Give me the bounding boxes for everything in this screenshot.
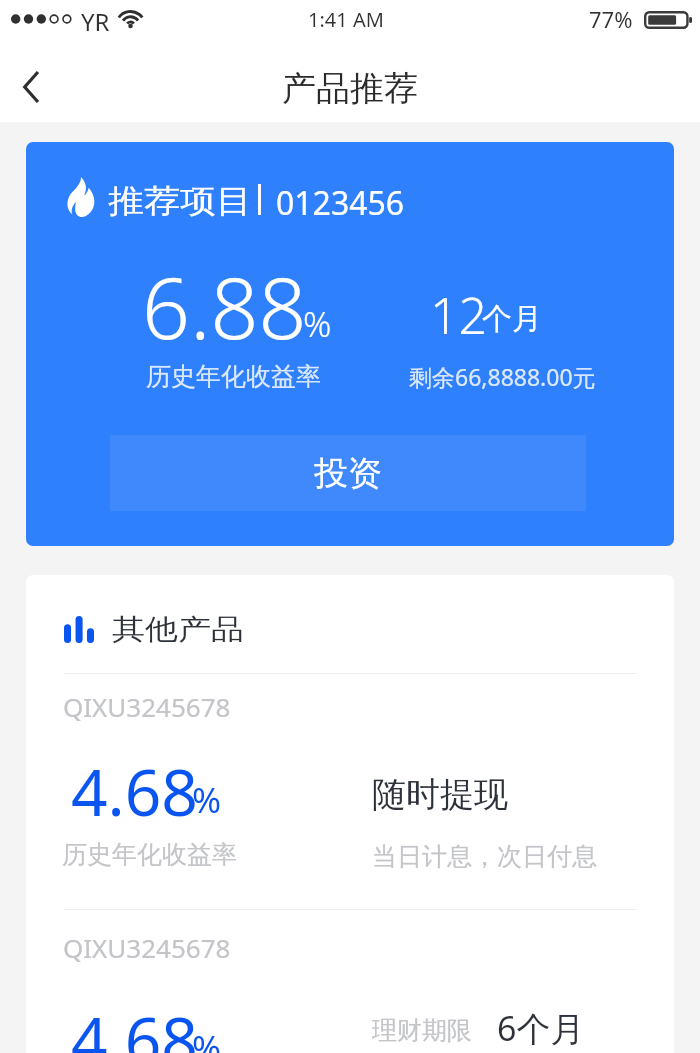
button[interactable]: QIXU3245678 (26, 673, 674, 908)
button[interactable]: Back (1, 49, 61, 125)
staticText: % (192, 776, 222, 824)
staticText: 6个月 (497, 1005, 585, 1051)
staticText: QIXU3245678 (63, 930, 231, 965)
staticText: 随时提现 (372, 773, 508, 816)
staticText: 历史年化收益率 (146, 361, 321, 392)
button[interactable]: 其他产品 (64, 611, 244, 653)
staticText: % (192, 1024, 222, 1053)
staticText: 个月 (482, 300, 542, 338)
staticText: 6.88 (142, 249, 307, 363)
staticText: 77% (589, 4, 633, 34)
staticText: QIXU3245678 (63, 689, 231, 724)
staticText: % (303, 300, 332, 348)
staticText: 其他产品 (112, 611, 244, 647)
staticText: YR (81, 5, 110, 38)
staticText: 投资 (314, 452, 382, 495)
button[interactable]: 投资 (110, 435, 586, 511)
staticText: 产品推荐 (282, 67, 418, 110)
staticText: 理财期限 (372, 1015, 472, 1046)
staticText: 4.68 (71, 996, 198, 1053)
staticText: 1:41 AM (308, 6, 384, 33)
staticText: 剩余66,8888.00元 (409, 361, 596, 392)
button[interactable]: 推荐项目 (26, 142, 674, 546)
staticText: 4.68 (71, 748, 198, 835)
staticText: 0123456 (276, 181, 405, 225)
staticText: 历史年化收益率 (62, 839, 237, 870)
staticText: 12 (430, 281, 488, 349)
staticText: 当日计息，次日付息 (372, 841, 597, 872)
staticText: 推荐项目 (108, 181, 252, 221)
button[interactable]: QIXU3245678 (26, 909, 674, 1053)
